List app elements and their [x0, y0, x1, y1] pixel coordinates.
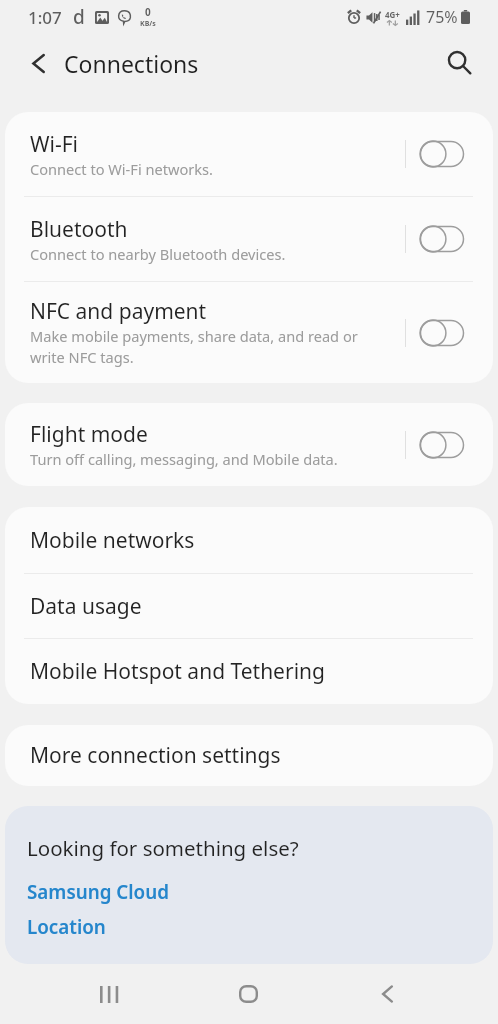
staticText: Flight mode	[30, 420, 148, 449]
button[interactable]: Samsung Cloud	[27, 879, 169, 905]
button[interactable]: Location	[27, 914, 106, 940]
button[interactable]: Flight mode	[5, 403, 493, 486]
staticText: Data usage	[30, 592, 142, 621]
staticText: Mobile Hotspot and Tethering	[30, 657, 325, 686]
staticText: Turn off calling, messaging, and Mobile …	[30, 449, 338, 469]
button[interactable]: Wi-Fi	[5, 112, 493, 196]
staticText: Mobile networks	[30, 526, 195, 555]
button[interactable]: Bluetooth switch	[406, 197, 465, 281]
staticText: Connections	[64, 48, 199, 79]
button[interactable]: Search	[432, 35, 488, 91]
button[interactable]: Home	[209, 964, 288, 1024]
staticText: 4G+	[385, 9, 400, 20]
button[interactable]: NFC and payment switch	[406, 282, 465, 383]
staticText: KB/s	[140, 19, 156, 29]
button[interactable]: Flight mode switch	[406, 403, 465, 486]
staticText: Make mobile payments, share data, and re…	[30, 326, 358, 368]
staticText: d	[73, 4, 85, 30]
staticText: Connect to Wi-Fi networks.	[30, 159, 213, 179]
button[interactable]: Recent apps	[69, 964, 148, 1024]
staticText: NFC and payment	[30, 297, 207, 326]
button[interactable]: Wi-Fi switch	[406, 112, 465, 196]
button[interactable]: NFC and payment	[5, 282, 493, 383]
staticText: Connect to nearby Bluetooth devices.	[30, 244, 286, 264]
button[interactable]: More connection settings	[5, 725, 493, 786]
staticText: More connection settings	[30, 741, 281, 770]
staticText: 0	[145, 5, 151, 19]
staticText: Looking for something else?	[27, 834, 299, 862]
button[interactable]: Data usage	[5, 574, 493, 638]
button[interactable]: Back	[348, 964, 427, 1024]
staticText: Wi-Fi	[30, 130, 79, 159]
button[interactable]: Mobile Hotspot and Tethering	[5, 639, 493, 704]
button[interactable]: Bluetooth	[5, 197, 493, 281]
button[interactable]: Mobile networks	[5, 507, 493, 573]
staticText: 1:07	[28, 6, 62, 29]
button[interactable]: Navigate up	[11, 36, 65, 90]
staticText: Bluetooth	[30, 215, 128, 244]
staticText: 75%	[426, 6, 458, 28]
